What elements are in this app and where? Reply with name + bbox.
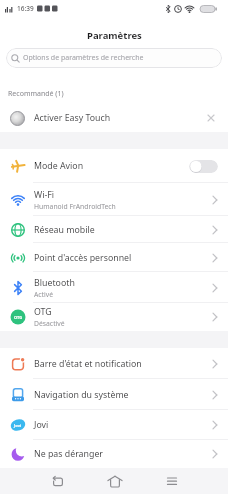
staticText: Ne pas déranger — [34, 448, 103, 460]
button[interactable]: Bluetooth — [0, 272, 228, 303]
button[interactable]: Options de paramètres de recherche — [6, 48, 222, 68]
staticText: Recommandé (1) — [8, 89, 64, 99]
button[interactable] — [29, 468, 86, 494]
button[interactable]: Wi-Fi — [0, 183, 228, 216]
staticText: Réseau mobile — [34, 224, 95, 236]
button[interactable] — [86, 468, 143, 494]
button[interactable]: Ne pas déranger — [0, 440, 228, 468]
button[interactable]: Barre d'état et notification — [0, 348, 228, 379]
button[interactable]: Mode Avion — [0, 149, 228, 183]
staticText: 16:39 — [17, 4, 34, 13]
button[interactable]: Point d'accès personnel — [0, 243, 228, 272]
staticText: Jovi — [34, 419, 49, 431]
staticText: Paramètres — [87, 29, 142, 42]
button[interactable]: Réseau mobile — [0, 216, 228, 243]
staticText: Activer Easy Touch — [34, 112, 111, 124]
staticText: OTG — [34, 306, 52, 318]
staticText: Mode Avion — [34, 160, 84, 172]
staticText: Bluetooth — [34, 277, 75, 289]
button[interactable] — [189, 160, 218, 173]
staticText: Jovi — [14, 423, 22, 428]
staticText: Désactivé — [34, 319, 65, 328]
staticText: Point d'accès personnel — [34, 252, 132, 264]
button[interactable] — [143, 468, 200, 494]
staticText: Activé — [34, 290, 54, 299]
button[interactable]: OTG — [0, 303, 228, 331]
button[interactable]: Activer Easy Touch — [0, 104, 228, 132]
staticText: Barre d'état et notification — [34, 358, 142, 370]
staticText: Navigation du système — [34, 389, 129, 401]
button[interactable]: Navigation du système — [0, 379, 228, 410]
staticText: OTG — [14, 315, 23, 320]
staticText: Humanoid FrAndroidTech — [34, 202, 116, 211]
staticText: Wi-Fi — [34, 189, 55, 201]
button[interactable]: Jovi — [0, 410, 228, 440]
staticText: Options de paramètres de recherche — [23, 53, 144, 63]
